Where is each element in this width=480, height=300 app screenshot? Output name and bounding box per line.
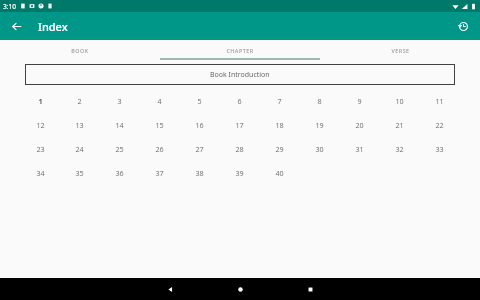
staticText: 20 (355, 120, 364, 130)
staticText: 25 (115, 144, 124, 154)
button[interactable]: 35 (60, 161, 99, 185)
staticText: 36 (115, 168, 124, 178)
staticText: 38 (195, 168, 204, 178)
button[interactable]: 22 (419, 113, 459, 137)
button[interactable]: 30 (299, 137, 339, 161)
button[interactable]: 37 (139, 161, 179, 185)
staticText: 1 (38, 96, 43, 106)
button[interactable]: 26 (139, 137, 179, 161)
staticText: 16 (195, 120, 204, 130)
button[interactable]: 33 (419, 137, 459, 161)
staticText: 19 (315, 120, 324, 130)
button[interactable]: 27 (179, 137, 219, 161)
button[interactable]: Home (218, 278, 262, 300)
staticText: 31 (355, 144, 364, 154)
button[interactable]: CHAPTER (160, 40, 320, 60)
staticText: Index (38, 19, 68, 34)
staticText: 8 (317, 96, 322, 106)
staticText: 29 (275, 144, 284, 154)
button[interactable]: 29 (259, 137, 299, 161)
button[interactable]: 1 (21, 89, 60, 113)
button[interactable]: 34 (21, 161, 60, 185)
button[interactable]: 28 (219, 137, 259, 161)
button[interactable]: 9 (339, 89, 379, 113)
staticText: CHAPTER (226, 47, 254, 54)
staticText: 37 (155, 168, 164, 178)
button[interactable]: 31 (339, 137, 379, 161)
button[interactable]: 25 (99, 137, 139, 161)
button[interactable]: VERSE (320, 40, 480, 60)
button[interactable]: 19 (299, 113, 339, 137)
button[interactable]: 3 (99, 89, 139, 113)
button[interactable]: 16 (179, 113, 219, 137)
button[interactable]: Book Introduction (25, 64, 455, 85)
button[interactable]: 6 (219, 89, 259, 113)
staticText: VERSE (391, 47, 410, 54)
button[interactable]: 18 (259, 113, 299, 137)
staticText: 18 (275, 120, 284, 130)
staticText: Book Introduction (210, 70, 270, 80)
staticText: 12 (36, 120, 45, 130)
staticText: 13 (75, 120, 84, 130)
button[interactable]: Back (148, 278, 192, 300)
staticText: 15 (155, 120, 164, 130)
button[interactable]: 8 (299, 89, 339, 113)
button[interactable]: History (451, 14, 475, 38)
button[interactable]: 14 (99, 113, 139, 137)
button[interactable]: 38 (179, 161, 219, 185)
staticText: 32 (395, 144, 404, 154)
staticText: 2 (77, 96, 82, 106)
button[interactable]: 40 (259, 161, 299, 185)
staticText: 27 (195, 144, 204, 154)
staticText: 24 (75, 144, 84, 154)
staticText: 10 (395, 96, 404, 106)
staticText: 14 (115, 120, 124, 130)
button[interactable]: 13 (60, 113, 99, 137)
button[interactable]: 21 (379, 113, 419, 137)
staticText: 5 (197, 96, 202, 106)
staticText: 34 (36, 168, 45, 178)
staticText: 6 (237, 96, 242, 106)
button[interactable]: 32 (379, 137, 419, 161)
button[interactable]: 20 (339, 113, 379, 137)
staticText: 11 (435, 96, 444, 106)
button[interactable]: 39 (219, 161, 259, 185)
button[interactable]: 7 (259, 89, 299, 113)
button[interactable]: 17 (219, 113, 259, 137)
staticText: 39 (235, 168, 244, 178)
staticText: 30 (315, 144, 324, 154)
staticText: 22 (435, 120, 444, 130)
staticText: 17 (235, 120, 244, 130)
staticText: 35 (75, 168, 84, 178)
staticText: 28 (235, 144, 244, 154)
staticText: 4 (157, 96, 162, 106)
staticText: 21 (395, 120, 404, 130)
staticText: 9 (357, 96, 362, 106)
staticText: 7 (277, 96, 282, 106)
button[interactable]: 4 (139, 89, 179, 113)
button[interactable]: 10 (379, 89, 419, 113)
button[interactable]: 15 (139, 113, 179, 137)
button[interactable]: 2 (60, 89, 99, 113)
button[interactable]: 24 (60, 137, 99, 161)
button[interactable]: Recent apps (288, 278, 332, 300)
staticText: BOOK (71, 47, 89, 54)
staticText: 3:10 (3, 2, 16, 11)
button[interactable]: 11 (419, 89, 459, 113)
staticText: 23 (36, 144, 45, 154)
button[interactable]: 5 (179, 89, 219, 113)
staticText: 33 (435, 144, 444, 154)
button[interactable]: Back (5, 15, 27, 37)
button[interactable]: BOOK (0, 40, 160, 60)
button[interactable]: 36 (99, 161, 139, 185)
staticText: 40 (275, 168, 284, 178)
button[interactable]: 23 (21, 137, 60, 161)
button[interactable]: 12 (21, 113, 60, 137)
staticText: 3 (117, 96, 122, 106)
staticText: 26 (155, 144, 164, 154)
